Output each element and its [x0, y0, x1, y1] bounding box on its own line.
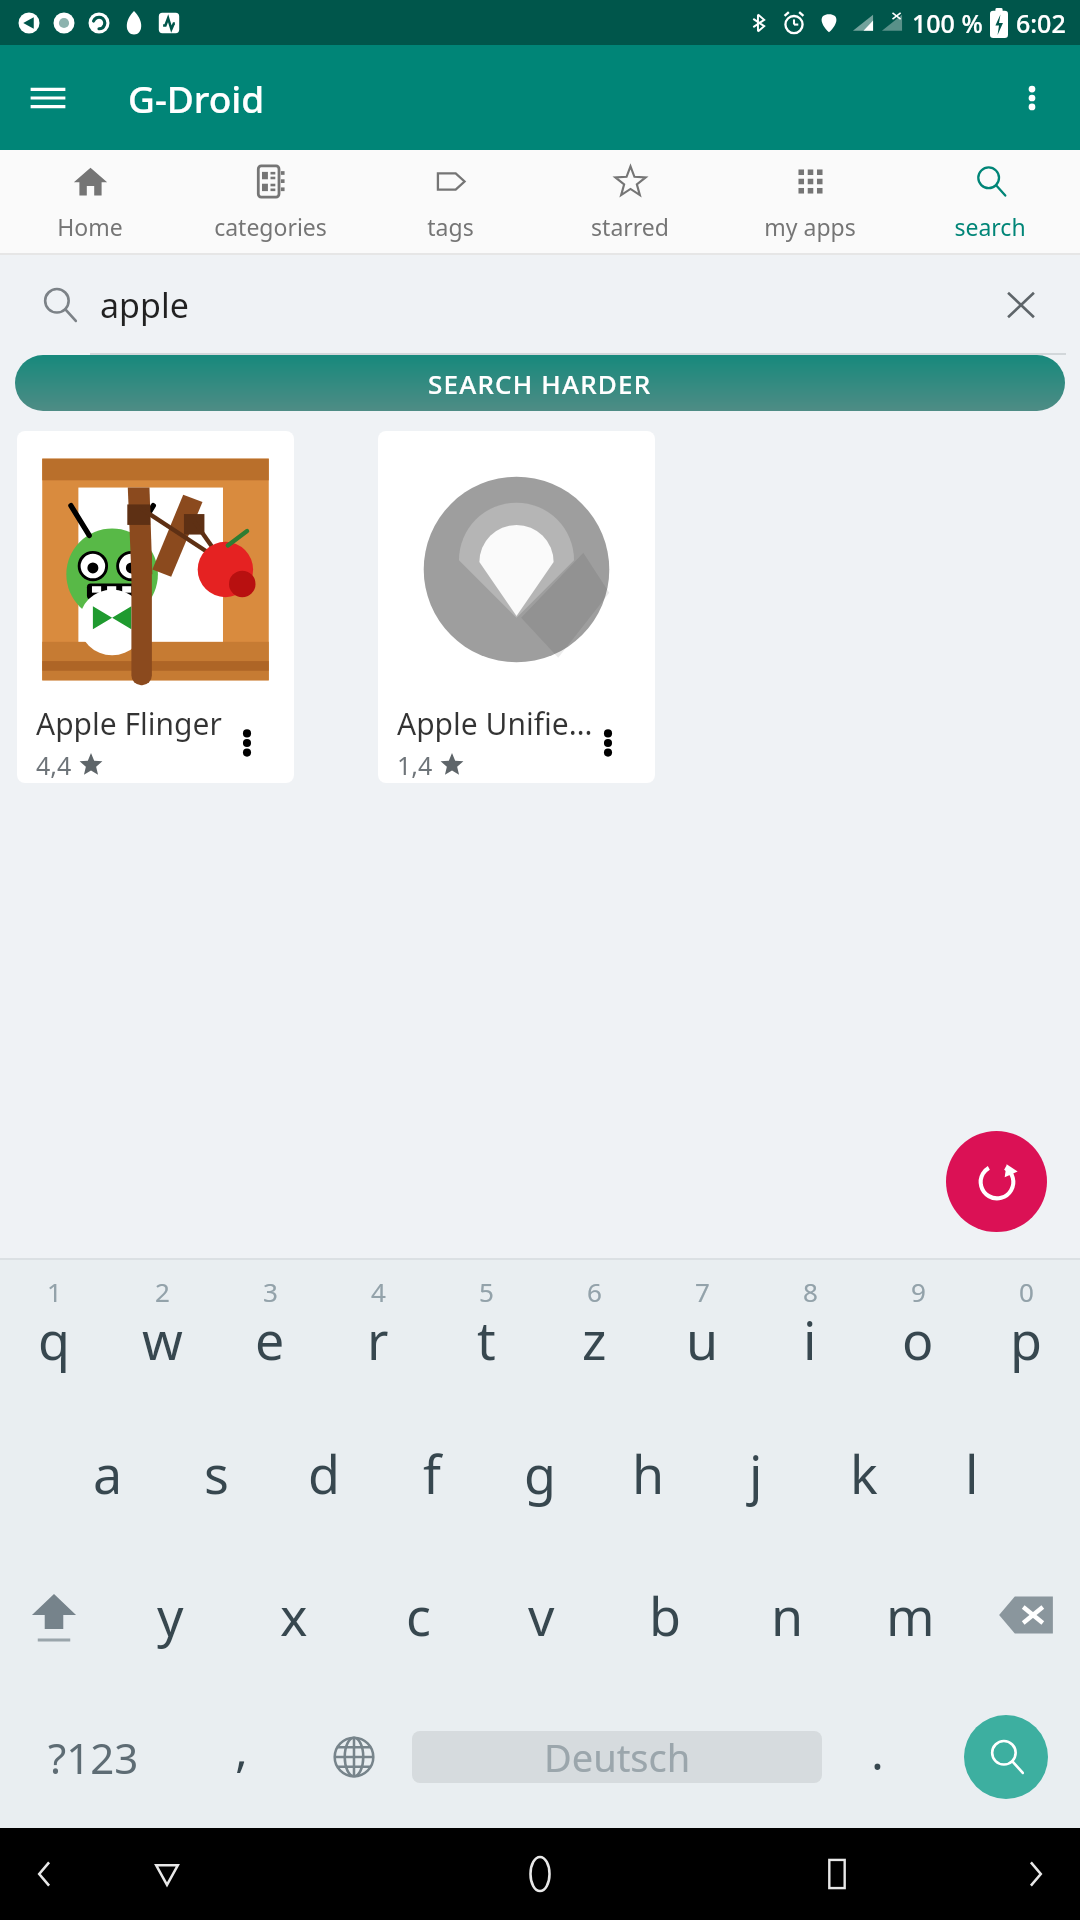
button[interactable]: Deutsch	[412, 1686, 822, 1828]
staticText: c	[406, 1580, 431, 1651]
button[interactable]: SEARCH HARDER	[15, 355, 1065, 411]
staticText: e	[255, 1304, 285, 1375]
staticText: f	[423, 1438, 441, 1509]
button[interactable]: More options	[1002, 68, 1062, 128]
staticText: 6	[587, 1274, 602, 1309]
staticText: Apple Unifie…	[397, 703, 593, 744]
staticText: m	[886, 1580, 935, 1651]
button[interactable]: Switch language	[296, 1686, 412, 1828]
button[interactable]: b	[603, 1544, 726, 1686]
staticText: 3	[263, 1274, 278, 1309]
staticText: z	[582, 1304, 607, 1375]
staticText: j	[749, 1438, 763, 1509]
staticText: y	[157, 1580, 184, 1651]
staticText: w	[142, 1304, 183, 1375]
button[interactable]: j	[702, 1402, 810, 1544]
staticText: t	[477, 1304, 496, 1375]
button[interactable]: 0	[972, 1260, 1080, 1402]
button[interactable]: f	[378, 1402, 486, 1544]
button[interactable]: Next	[1004, 1843, 1066, 1905]
staticText: d	[308, 1438, 340, 1509]
button[interactable]: 6	[540, 1260, 648, 1402]
staticText: v	[528, 1580, 555, 1651]
button[interactable]: x	[232, 1544, 356, 1686]
button[interactable]: ,	[186, 1686, 296, 1828]
button[interactable]: 7	[648, 1260, 756, 1402]
button[interactable]: 2	[108, 1260, 216, 1402]
staticText: 1,4	[397, 748, 433, 782]
button[interactable]: categories	[180, 150, 360, 255]
button[interactable]: my apps	[720, 150, 900, 255]
button[interactable]: Recent apps	[806, 1843, 868, 1905]
button[interactable]: ?123	[0, 1686, 186, 1828]
button[interactable]: App options for Apple Unifie…	[579, 714, 637, 772]
button[interactable]: y	[108, 1544, 232, 1686]
button[interactable]: s	[162, 1402, 270, 1544]
button[interactable]: starred	[540, 150, 720, 255]
button[interactable]: Refresh repositories	[946, 1131, 1047, 1232]
button[interactable]: Home	[509, 1843, 571, 1905]
staticText: x	[280, 1580, 308, 1651]
button[interactable]: Clear search	[992, 276, 1050, 334]
staticText: tags	[427, 211, 474, 242]
staticText: Home	[57, 211, 123, 242]
button[interactable]: search	[900, 150, 1080, 255]
staticText: h	[632, 1438, 665, 1509]
staticText: n	[771, 1580, 804, 1651]
button[interactable]: apple	[0, 255, 1080, 355]
button[interactable]: k	[810, 1402, 918, 1544]
button[interactable]: Home	[0, 150, 180, 255]
button[interactable]: 1	[0, 1260, 108, 1402]
button[interactable]: a	[54, 1402, 162, 1544]
button[interactable]: .	[822, 1686, 932, 1828]
staticText: starred	[591, 211, 669, 242]
staticText: 1	[47, 1274, 62, 1309]
button[interactable]: Apple Unifie…	[378, 431, 655, 783]
staticText: 4	[371, 1274, 386, 1309]
staticText: SEARCH HARDER	[428, 366, 652, 401]
staticText: 100 %	[912, 6, 983, 40]
staticText: o	[902, 1304, 934, 1375]
button[interactable]: n	[726, 1544, 849, 1686]
button[interactable]: Shift	[0, 1544, 108, 1686]
button[interactable]: Search	[932, 1686, 1080, 1828]
staticText: 6:02	[1016, 6, 1066, 40]
button[interactable]: l	[918, 1402, 1026, 1544]
button[interactable]: h	[594, 1402, 702, 1544]
staticText: ?123	[48, 1729, 139, 1786]
button[interactable]: App options for Apple Flinger	[218, 714, 276, 772]
staticText: b	[649, 1580, 681, 1651]
staticText: G-Droid	[128, 73, 265, 123]
staticText: apple	[100, 282, 189, 328]
staticText: u	[686, 1304, 719, 1375]
staticText: .	[871, 1719, 884, 1784]
button[interactable]: c	[356, 1544, 480, 1686]
button[interactable]: m	[849, 1544, 972, 1686]
staticText: p	[1010, 1304, 1042, 1375]
staticText: 0	[1019, 1274, 1034, 1309]
button[interactable]: v	[480, 1544, 603, 1686]
button[interactable]: 9	[864, 1260, 972, 1402]
button[interactable]: Back	[136, 1843, 198, 1905]
button[interactable]: Backspace	[972, 1544, 1080, 1686]
button[interactable]: g	[486, 1402, 594, 1544]
button[interactable]: 3	[216, 1260, 324, 1402]
button[interactable]: Previous	[14, 1843, 76, 1905]
staticText: 2	[155, 1274, 170, 1309]
button[interactable]: Apple Flinger	[17, 431, 294, 783]
staticText: 7	[695, 1274, 710, 1309]
staticText: search	[954, 211, 1026, 242]
button[interactable]: d	[270, 1402, 378, 1544]
staticText: 8	[803, 1274, 818, 1309]
button[interactable]: tags	[360, 150, 540, 255]
staticText: Apple Flinger	[36, 703, 222, 744]
button[interactable]: 5	[432, 1260, 540, 1402]
staticText: 4,4	[36, 748, 72, 782]
button[interactable]: Open navigation drawer	[18, 68, 78, 128]
staticText: 9	[911, 1274, 926, 1309]
staticText: k	[850, 1438, 878, 1509]
staticText: r	[367, 1304, 389, 1375]
staticText: s	[204, 1438, 229, 1509]
button[interactable]: 8	[756, 1260, 864, 1402]
button[interactable]: 4	[324, 1260, 432, 1402]
